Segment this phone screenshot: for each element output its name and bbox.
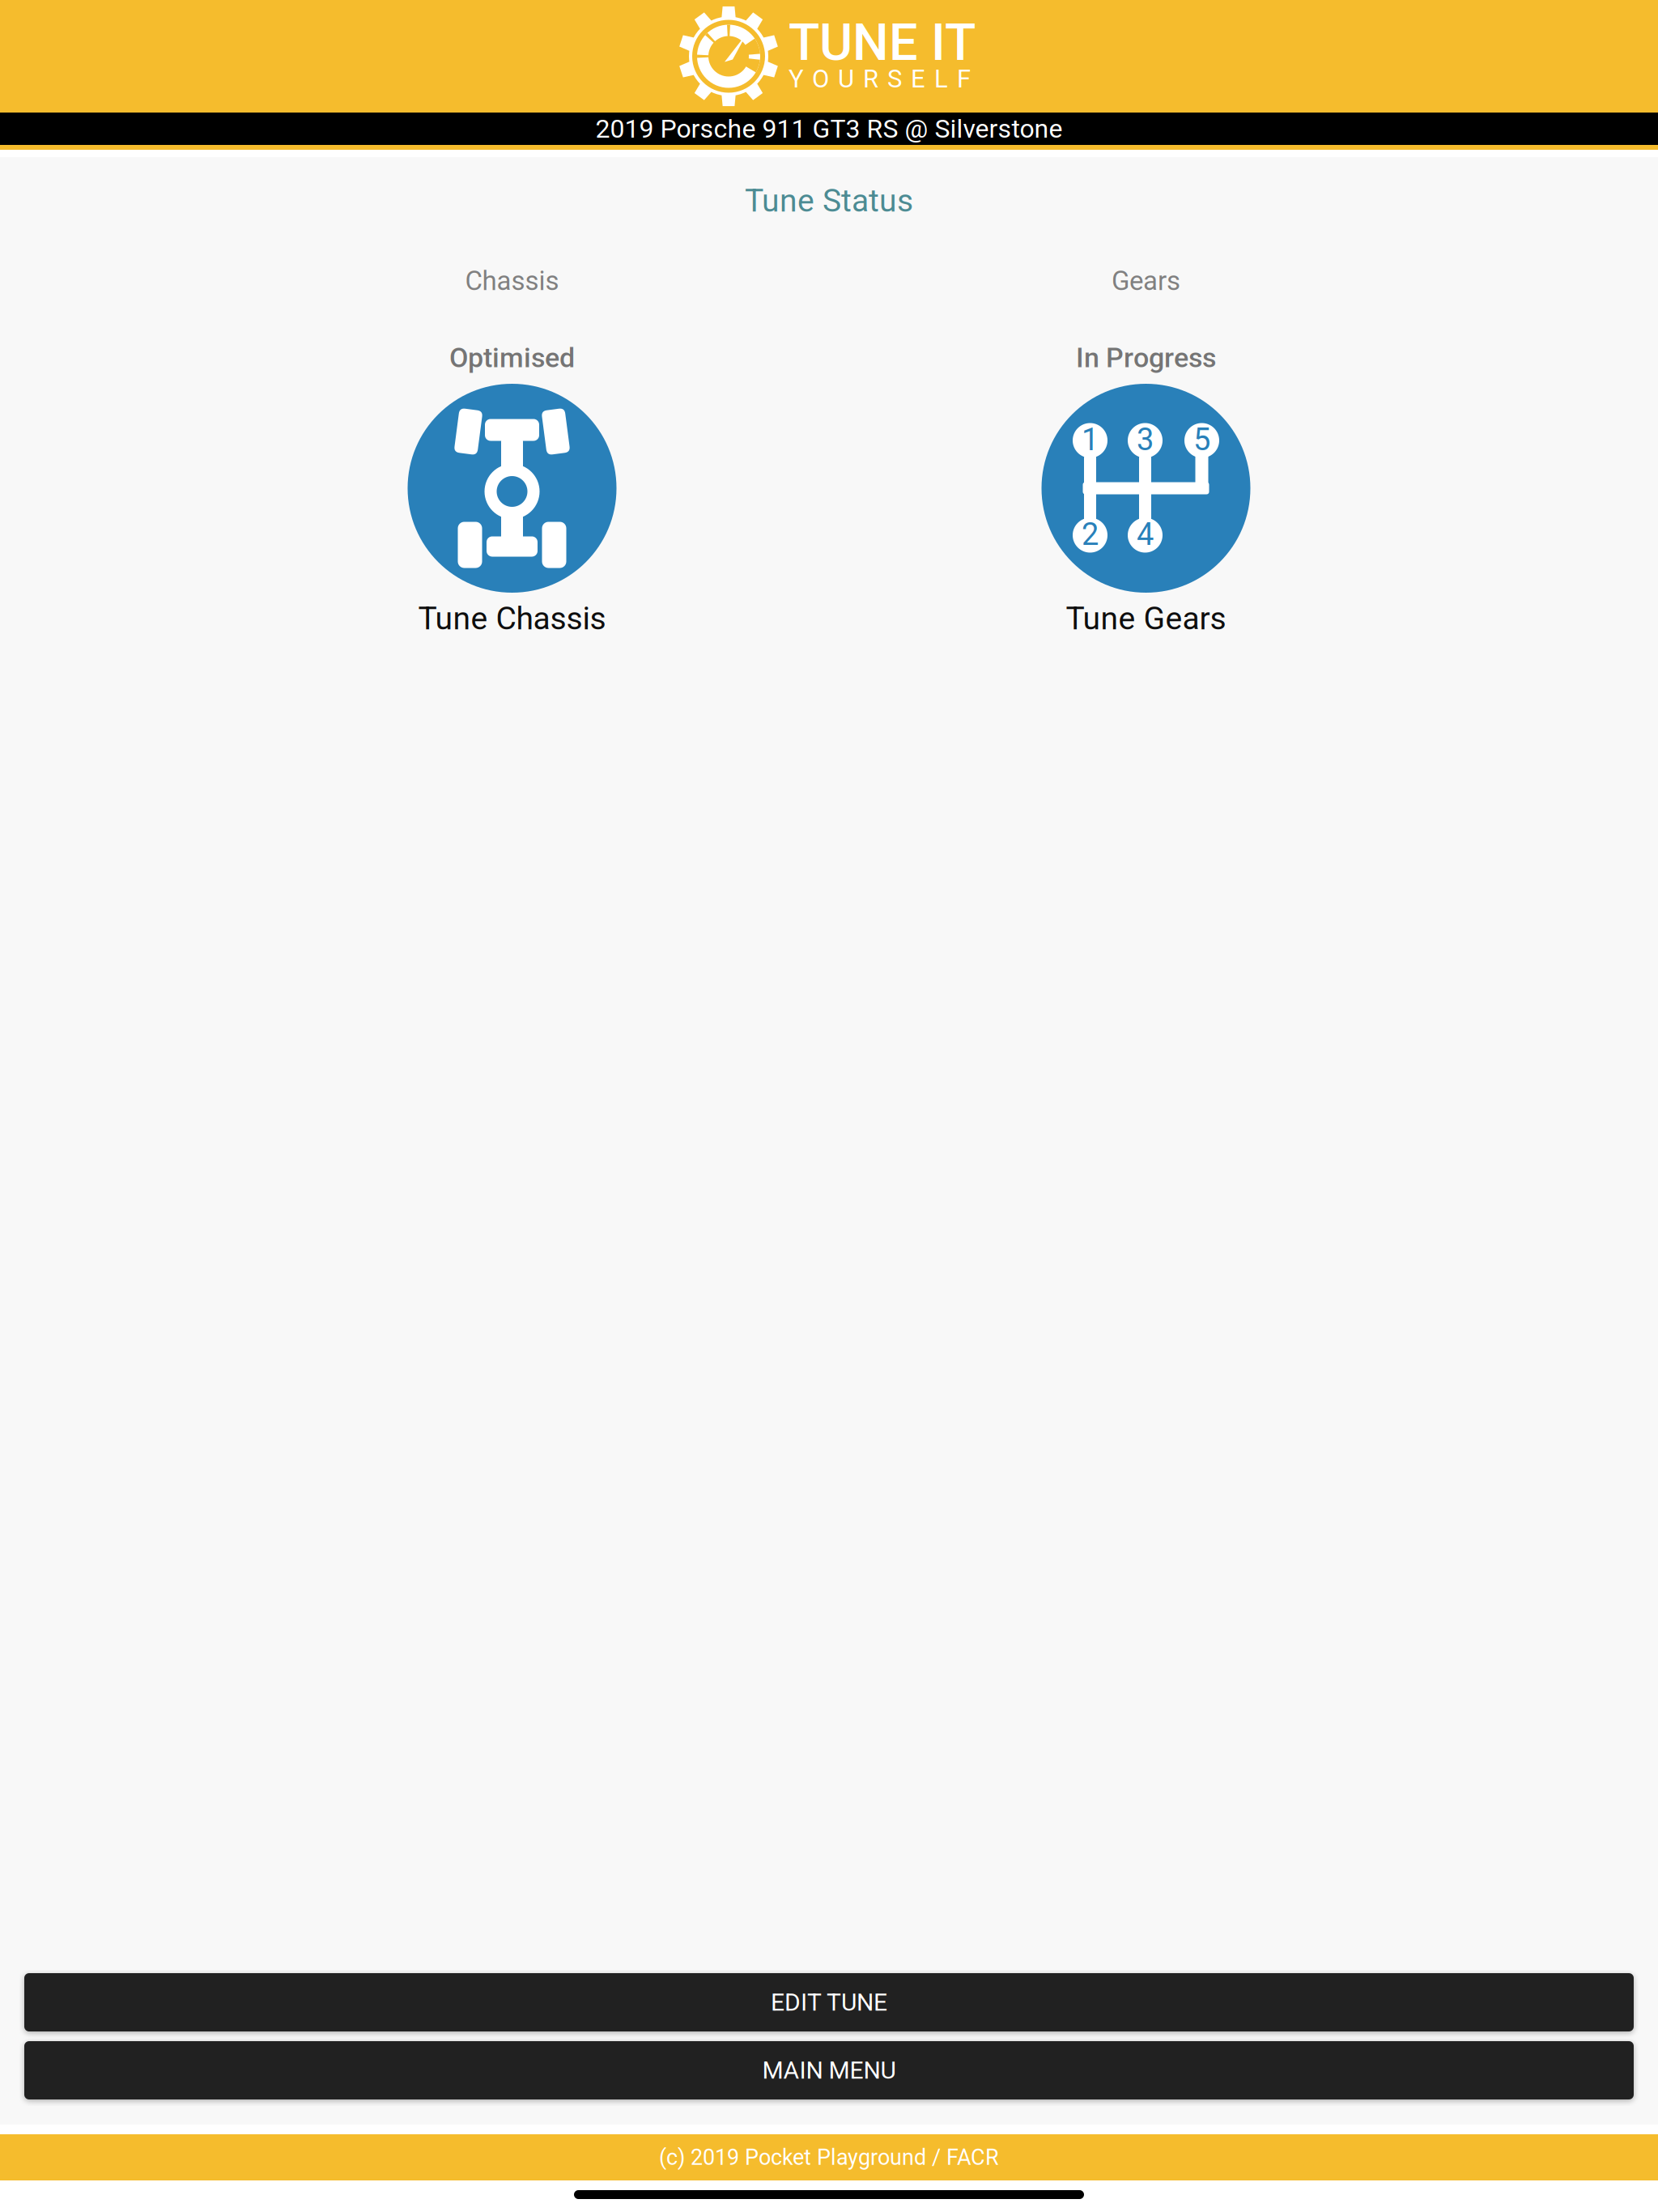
staticText: 2	[1082, 516, 1099, 552]
staticText: Optimised	[449, 342, 575, 374]
staticText: (c) 2019 Pocket Playground / FACR	[659, 2145, 999, 2170]
staticText: 4	[1137, 516, 1154, 552]
staticText: Tune Chassis	[418, 600, 606, 637]
staticText: Gears	[1112, 265, 1180, 297]
staticText: 3	[1137, 422, 1154, 458]
staticText: Tune Status	[745, 182, 913, 219]
staticText: 1	[1082, 422, 1099, 458]
staticText: 2019 Porsche 911 GT3 RS @ Silverstone	[595, 114, 1063, 144]
staticText: MAIN MENU	[762, 2056, 896, 2085]
staticText: YOURSELF	[789, 64, 971, 94]
staticText: Tune Gears	[1066, 600, 1226, 637]
staticText: 5	[1193, 422, 1210, 458]
button[interactable]: EDIT TUNE	[24, 1973, 1634, 2031]
staticText: Chassis	[465, 265, 559, 297]
staticText: In Progress	[1076, 342, 1216, 374]
button[interactable]: MAIN MENU	[24, 2041, 1634, 2099]
button[interactable]: Tune Gears	[829, 384, 1463, 640]
staticText: EDIT TUNE	[771, 1988, 887, 2017]
button[interactable]: Tune Chassis	[195, 384, 829, 640]
staticText: TUNE IT	[789, 13, 976, 72]
